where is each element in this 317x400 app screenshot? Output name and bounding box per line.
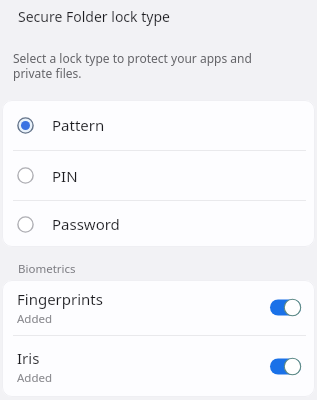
staticText: Biometrics xyxy=(18,261,76,277)
staticText: PIN xyxy=(52,166,78,186)
staticText: Added xyxy=(17,311,53,327)
staticText: Fingerprints xyxy=(17,289,103,309)
staticText: Added xyxy=(17,370,53,386)
staticText: Select a lock type to protect your apps … xyxy=(13,50,252,82)
button[interactable]: Iris xyxy=(2,336,315,397)
button[interactable]: Password xyxy=(2,201,315,247)
staticText: Pattern xyxy=(52,115,105,135)
staticText: Iris xyxy=(17,348,40,368)
button[interactable]: Pattern xyxy=(2,100,315,150)
staticText: Password xyxy=(52,214,120,234)
button[interactable]: PIN xyxy=(2,151,315,200)
staticText: Secure Folder lock type xyxy=(18,7,170,26)
button[interactable]: Fingerprints xyxy=(2,280,315,335)
